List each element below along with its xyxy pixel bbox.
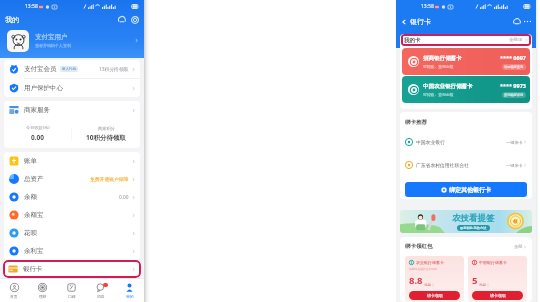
button[interactable]: 农业银行储蓄卡 [405,256,464,302]
staticText: 10积分待领取 [86,133,126,142]
button[interactable]: 客服 [116,14,127,25]
button[interactable]: 中国农业银行储蓄卡 [402,76,530,103]
button[interactable]: 招商银行储蓄卡 [402,48,530,75]
staticText: 0.00 [31,133,44,142]
staticText: 一键来卡 [506,140,523,145]
staticText: 元起 [424,283,431,287]
button[interactable]: 用户保护中心 [9,79,136,97]
staticText: 我的卡 [404,37,421,44]
button[interactable]: 中国农业银行 [405,138,527,146]
staticText: 我的 [126,294,134,299]
staticText: 商家积分 [98,126,115,131]
button[interactable]: 我的卡 [404,34,528,46]
staticText: 5 [472,274,478,287]
staticText: 账单 [24,157,37,165]
staticText: 还能同去做什么卡好呢 [409,267,437,271]
staticText: 领 [513,219,518,225]
staticText: 口碑 [68,294,76,299]
staticText: 中国银行储蓄卡 [479,260,507,265]
button[interactable]: 银行卡 [8,262,136,276]
staticText: 13:58 [421,3,434,10]
staticText: 绑卡领取 [490,293,506,298]
staticText: 8.8 [409,274,423,287]
button[interactable]: 商家服务 [9,101,136,119]
staticText: 免费开通账户保障 [90,176,129,182]
staticText: 首页 [10,294,18,299]
staticText: 农技看提签 [452,213,495,224]
staticText: 13积分待领取 [99,66,129,73]
staticText: 农业银行储蓄卡 [416,260,444,265]
button[interactable]: 绑定其他银行卡 [405,182,527,197]
staticText: 查询额度详情 [504,93,524,97]
staticText: 支付宝会员 [24,65,57,73]
staticText: | [432,282,434,287]
staticText: 今日收款(元) [26,125,50,131]
staticText: 用户保护中心 [24,84,63,92]
staticText: 招商银行储蓄卡 [423,55,462,62]
button[interactable]: 余利宝 [9,242,136,260]
button[interactable]: 绑卡领红包 [405,243,527,250]
staticText: 可转账、查询余额 [423,64,454,69]
button[interactable]: 总资产 [9,170,136,188]
button[interactable]: 我的 [115,279,144,302]
staticText: 绑卡推荐 [405,119,427,126]
staticText: 一键来卡 [506,163,523,168]
staticText: 余利宝 [24,247,44,255]
button[interactable]: 支付宝用户 [7,26,139,55]
button[interactable]: 账单 [9,152,136,170]
button[interactable]: 理财 [28,279,57,302]
staticText: 花呗 [24,229,37,237]
staticText: 0.00 [119,194,129,201]
staticText: 理财 [39,294,47,299]
staticText: 商家服务 [24,106,50,114]
staticText: 总资产 [24,175,44,183]
staticText: 元起 [479,283,486,287]
staticText: 我的 [5,15,19,24]
staticText: 13:58 [25,3,38,10]
staticText: 信用额度查询 [504,65,524,69]
staticText: 绑卡领取 [427,293,443,298]
staticText: 广东省农村信用社联合社 [416,162,469,168]
staticText: 中国农业银行 [416,139,445,145]
staticText: 消息 [97,294,105,299]
staticText: 绑卡领红包 [405,243,433,250]
button[interactable]: 首页 [0,279,28,302]
staticText: 银行卡 [410,17,431,26]
button[interactable]: 花呗 [9,224,136,242]
staticText: 新人礼包 [62,67,76,71]
button[interactable]: 口碑 [57,279,86,302]
button[interactable]: 客服 [511,16,522,27]
staticText: **** 6697 [500,54,526,61]
staticText: 可转账、查询余额 [423,92,454,97]
button[interactable]: 中国银行储蓄卡 [468,256,527,302]
staticText: 全部 [514,244,523,249]
button[interactable]: 更多 [522,16,533,27]
staticText: 支付宝用户 [35,33,68,41]
staticText: 银行卡 [23,265,43,273]
button[interactable]: 农技看提签 [400,210,532,233]
staticText: | [487,282,489,287]
button[interactable]: 广东省农村信用社联合社 [405,161,527,169]
button[interactable]: 余额宝 [9,206,136,224]
staticText: 最新补贴 高效方法 [460,226,487,230]
staticText: 余额宝 [24,211,44,219]
staticText: 余额 [24,193,37,201]
button[interactable]: 支付宝会员 [9,60,136,78]
button[interactable]: 设置 [129,14,140,25]
staticText: 中国农业银行储蓄卡 [423,83,473,90]
button[interactable]: 消息 [86,279,115,302]
staticText: 绑定其他银行卡 [449,186,491,194]
staticText: 查看并编辑个人资料 [35,43,71,48]
staticText: 全部(3) [509,37,523,43]
staticText: **** 9973 [500,82,526,89]
button[interactable]: 返回 [398,16,409,27]
button[interactable]: 余额 [9,188,136,206]
